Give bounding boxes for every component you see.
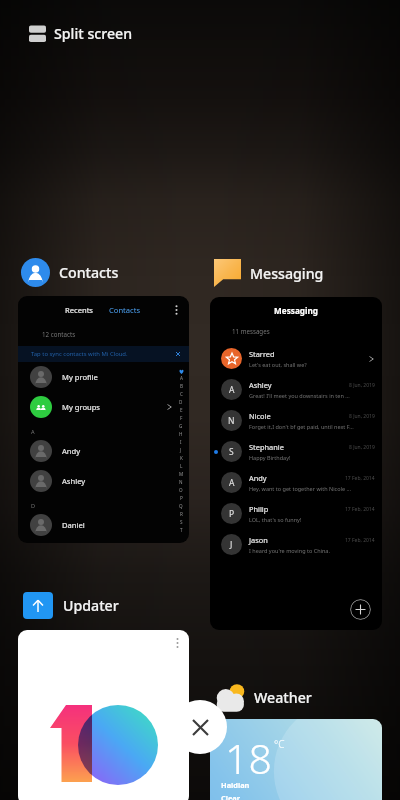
button[interactable]: Ashley xyxy=(18,466,189,496)
staticText: Forget it,I don't bf get paid, until nex… xyxy=(249,423,354,430)
staticText: Philip xyxy=(249,504,269,514)
staticText: °C xyxy=(274,737,285,751)
staticText: Haidian xyxy=(221,780,250,790)
button[interactable]: Andy xyxy=(18,436,189,466)
staticText: K xyxy=(180,455,183,461)
staticText: Contacts xyxy=(109,305,141,315)
staticText: 18 xyxy=(225,730,272,786)
button[interactable]: N xyxy=(210,405,382,436)
button[interactable]: 18 xyxy=(210,719,382,800)
staticText: I heard you're moving to China. xyxy=(249,547,330,554)
button[interactable]: Messaging xyxy=(214,259,324,287)
button[interactable]: Recents xyxy=(18,296,189,543)
button[interactable]: Starred xyxy=(210,343,382,374)
staticText: Andy xyxy=(62,446,81,456)
staticText: Clear xyxy=(221,793,241,800)
staticText: 17 Feb, 2014 xyxy=(345,475,375,482)
button[interactable]: A xyxy=(210,374,382,405)
staticText: Tap to sync contacts with Mi Cloud. xyxy=(31,350,128,358)
staticText: N xyxy=(179,479,183,485)
staticText: A xyxy=(31,428,35,436)
staticText: F xyxy=(180,415,183,421)
button[interactable]: My groups xyxy=(18,392,189,422)
staticText: Q xyxy=(179,503,183,509)
staticText: 12 contacts xyxy=(42,330,76,338)
staticText: 8 Jun, 2019 xyxy=(349,444,375,451)
staticText: T xyxy=(180,527,183,533)
staticText: Weather xyxy=(254,688,312,707)
button[interactable]: My profile xyxy=(18,362,189,392)
staticText: C xyxy=(180,391,183,397)
staticText: Andy xyxy=(249,473,267,483)
staticText: 8 Jun, 2019 xyxy=(349,382,375,389)
staticText: 17 Feb, 2014 xyxy=(345,506,375,513)
staticText: M xyxy=(179,471,184,477)
staticText: G xyxy=(179,423,183,429)
button[interactable]: Updater xyxy=(23,592,119,619)
staticText: L xyxy=(180,463,183,469)
staticText: Messaging xyxy=(250,264,324,283)
staticText: 17 Feb, 2014 xyxy=(345,537,375,544)
staticText: B xyxy=(180,383,183,389)
staticText: Nicole xyxy=(249,411,271,421)
staticText: Stephanie xyxy=(249,442,284,452)
staticText: E xyxy=(180,407,183,413)
staticText: A xyxy=(229,384,235,396)
staticText: A xyxy=(180,375,183,381)
button[interactable]: Close xyxy=(173,700,227,754)
staticText: O xyxy=(179,487,183,493)
staticText: Great! I'll meet you downstairs in ten .… xyxy=(249,392,350,399)
staticText: Starred xyxy=(249,349,275,359)
button[interactable]: Messaging xyxy=(210,297,382,630)
staticText: S xyxy=(180,519,183,525)
button[interactable] xyxy=(18,630,189,800)
staticText: P xyxy=(180,495,183,501)
button[interactable]: J xyxy=(210,529,382,560)
staticText: A xyxy=(229,477,235,489)
staticText: LOL, that's so funny! xyxy=(249,516,302,523)
button[interactable]: A xyxy=(210,467,382,498)
staticText: Hey, want to get together with Nicole ..… xyxy=(249,485,351,492)
button[interactable]: Weather xyxy=(214,682,312,713)
staticText: My groups xyxy=(62,402,100,412)
staticText: Messaging xyxy=(210,305,382,316)
staticText: Split screen xyxy=(54,24,133,43)
button[interactable]: Contacts xyxy=(21,258,119,287)
staticText: D xyxy=(179,399,183,405)
staticText: Daniel xyxy=(62,520,85,530)
button[interactable]: S xyxy=(210,436,382,467)
staticText: My profile xyxy=(62,372,98,382)
button[interactable]: P xyxy=(210,498,382,529)
staticText: Let's eat out, shall we? xyxy=(249,361,307,368)
staticText: Happy Birthday! xyxy=(249,454,291,461)
button[interactable]: Daniel xyxy=(18,510,189,540)
staticText: S xyxy=(229,446,234,458)
staticText: Recents xyxy=(65,305,94,315)
button[interactable]: Split screen xyxy=(29,24,133,43)
button[interactable]: New message xyxy=(350,599,371,620)
staticText: 8 Jun, 2019 xyxy=(349,413,375,420)
staticText: 11 messages xyxy=(232,327,270,335)
staticText: N xyxy=(228,415,235,427)
staticText: Contacts xyxy=(59,263,119,282)
staticText: D xyxy=(31,502,36,510)
staticText: R xyxy=(180,511,183,517)
staticText: P xyxy=(229,508,235,520)
staticText: H xyxy=(179,431,183,437)
staticText: J xyxy=(230,539,233,551)
staticText: I xyxy=(180,439,182,445)
staticText: Ashley xyxy=(62,476,86,486)
staticText: J xyxy=(180,447,182,453)
staticText: Jason xyxy=(249,535,268,545)
staticText: Updater xyxy=(63,596,119,615)
staticText: Ashley xyxy=(249,380,272,390)
